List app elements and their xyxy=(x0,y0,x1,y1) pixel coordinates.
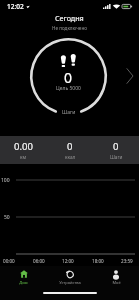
button[interactable]: Дом xyxy=(0,266,47,288)
staticText: 100 xyxy=(1,177,10,184)
staticText: Цель 5000 xyxy=(56,85,81,92)
staticText: ккал xyxy=(65,154,76,160)
staticText: 00:00 xyxy=(3,258,15,264)
staticText: 12:00 xyxy=(62,258,74,264)
staticText: Сегодня xyxy=(55,13,84,23)
staticText: Не подключено xyxy=(52,25,87,31)
staticText: Шаги xyxy=(110,154,123,160)
staticText: 0 xyxy=(64,68,73,87)
staticText: 50 xyxy=(4,214,10,221)
button[interactable]: 0 xyxy=(30,38,107,115)
staticText: 23:59 xyxy=(121,258,133,264)
staticText: 0 xyxy=(67,140,73,153)
staticText: 18:00 xyxy=(92,258,104,264)
button[interactable]: 0 xyxy=(93,136,139,164)
staticText: 0.00 xyxy=(14,140,33,153)
staticText: 06:00 xyxy=(33,258,45,264)
staticText: км xyxy=(20,154,27,160)
staticText: 12:02 xyxy=(7,2,24,11)
button[interactable]: Подробнее xyxy=(120,62,139,90)
staticText: Шаги xyxy=(62,109,76,116)
staticText: Дом xyxy=(19,280,28,285)
button[interactable]: Моё xyxy=(93,266,139,288)
staticText: 0 xyxy=(113,140,119,153)
button[interactable]: Устройства xyxy=(47,266,93,288)
button[interactable]: 0.00 xyxy=(0,136,47,164)
staticText: Устройства xyxy=(59,280,81,285)
button[interactable]: 0 xyxy=(47,136,93,164)
staticText: Моё xyxy=(112,280,121,285)
